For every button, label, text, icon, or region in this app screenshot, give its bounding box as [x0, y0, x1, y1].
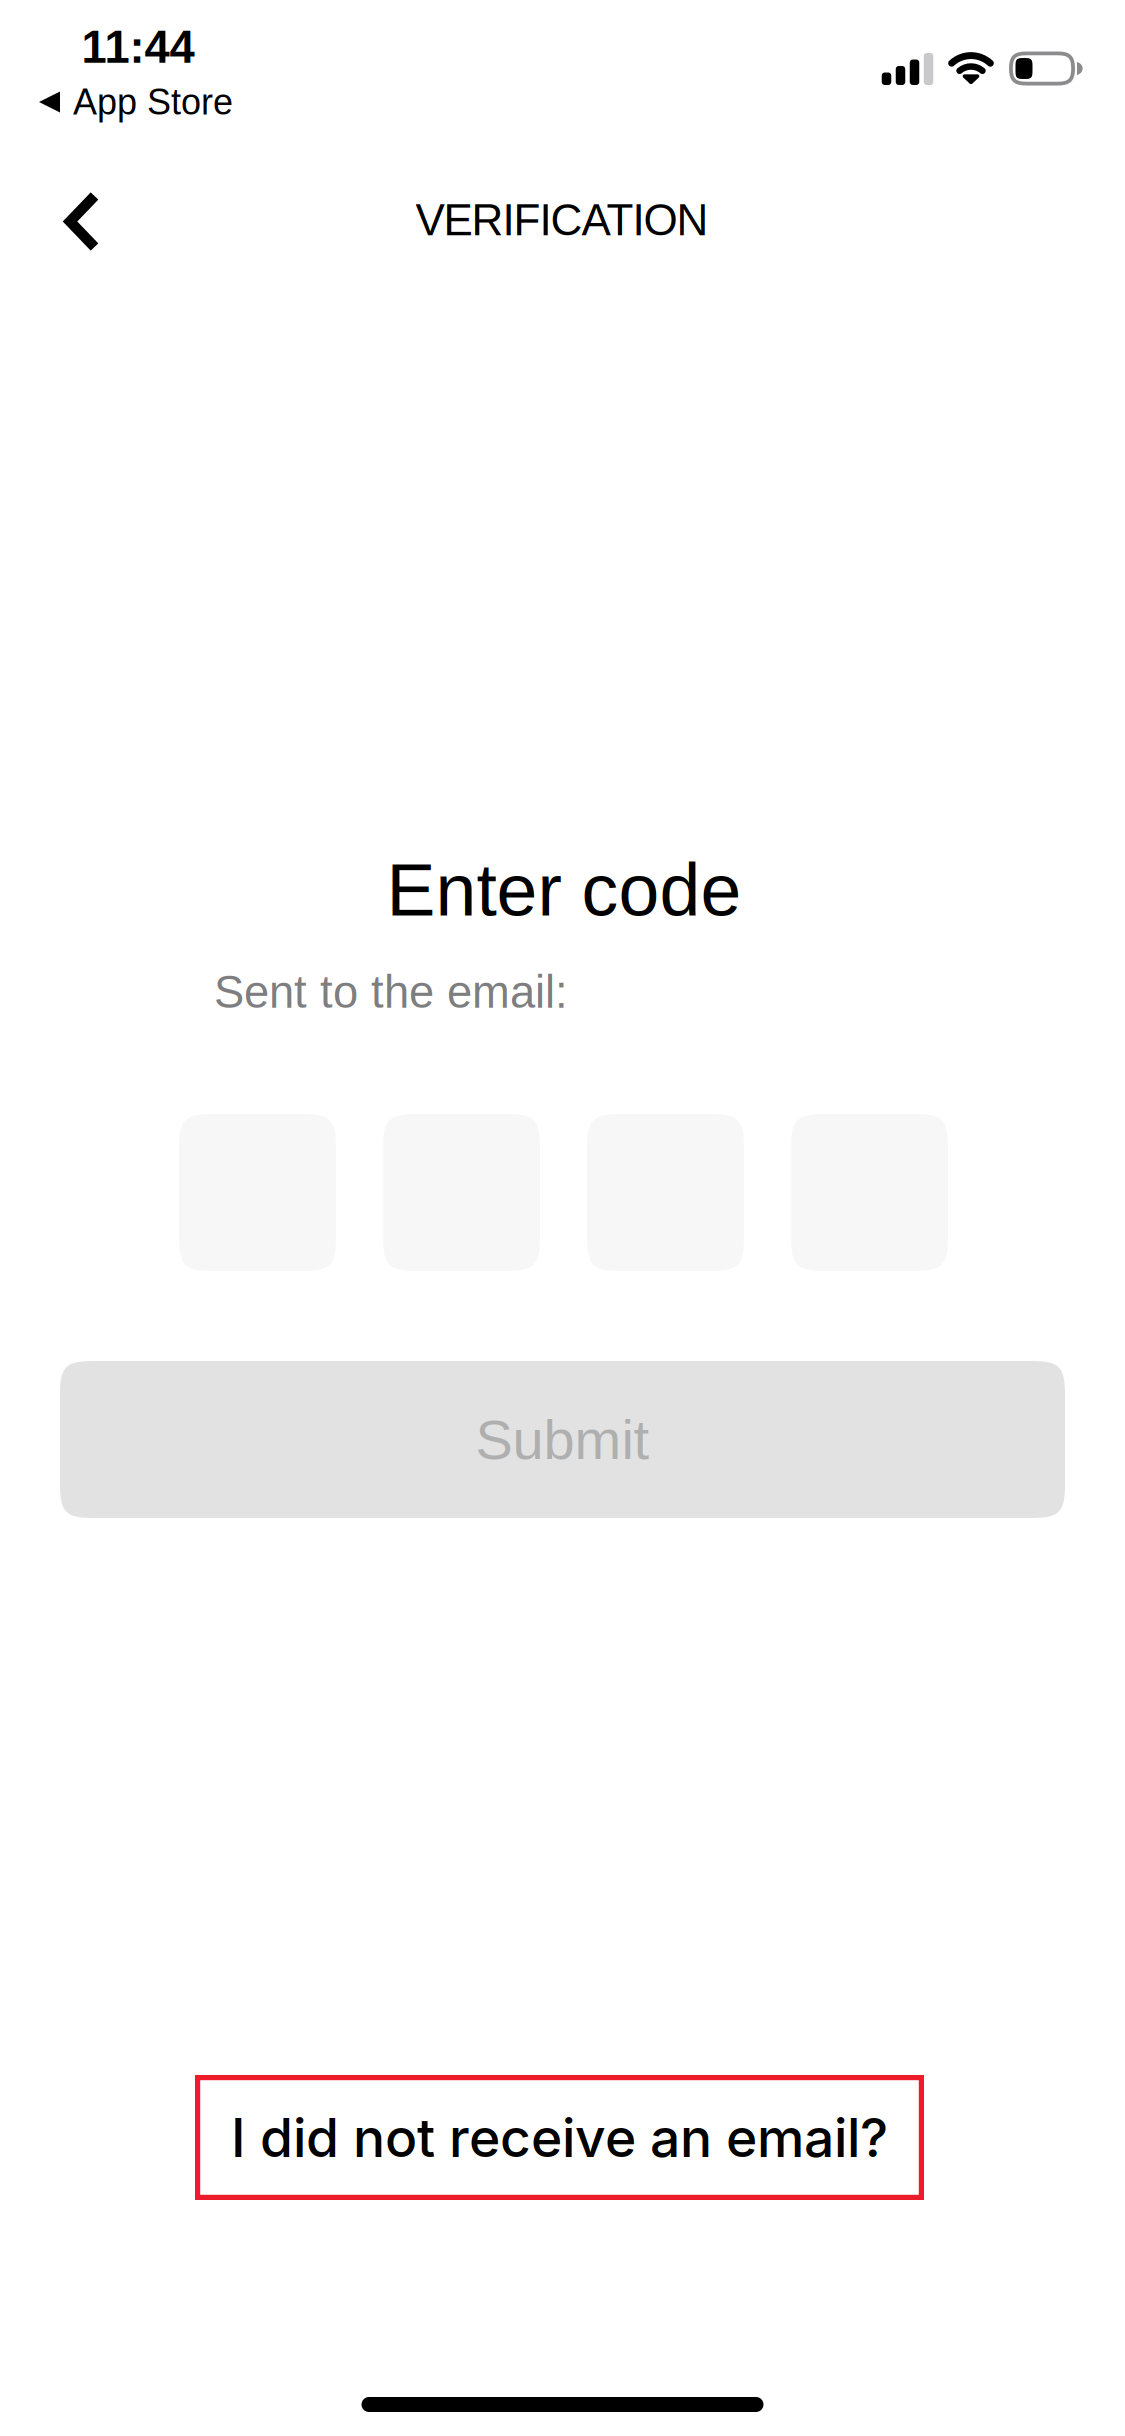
staticText: I did not receive an email? [231, 2105, 888, 2170]
button[interactable]: I did not receive an email? [195, 2075, 924, 2200]
staticText: 11:44 [81, 22, 194, 72]
staticText: Enter code [386, 849, 741, 931]
staticText: Submit [475, 1408, 649, 1471]
staticText: Sent to the email: [214, 967, 568, 1017]
staticText: App Store [73, 82, 233, 122]
button[interactable]: Submit [60, 1361, 1065, 1518]
staticText: VERIFICATION [415, 195, 708, 245]
button[interactable]: Back [18, 166, 144, 276]
button[interactable]: Back to App Store [39, 82, 233, 122]
